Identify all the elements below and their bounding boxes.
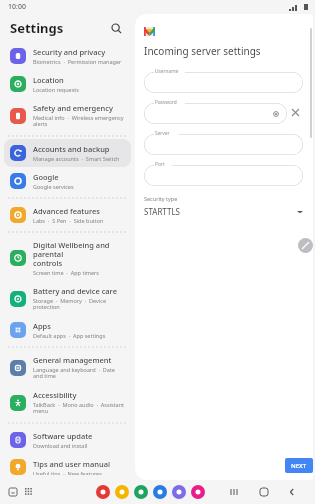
staticText: Password [155, 99, 177, 106]
staticText: Incoming server settings [144, 44, 261, 58]
button[interactable]: msg [153, 485, 167, 499]
staticText: Google [33, 172, 59, 182]
button[interactable] [144, 72, 303, 93]
button[interactable]: cam [191, 485, 205, 499]
button[interactable]: All apps [22, 485, 36, 499]
button[interactable]: Digital Wellbeing and parental controls [4, 235, 131, 281]
button[interactable]: Back [284, 484, 300, 500]
staticText: NEXT [291, 462, 307, 470]
button[interactable]: Battery and device care [4, 281, 131, 316]
staticText: Manage accounts · Smart Switch [33, 155, 120, 162]
staticText: Username [155, 68, 179, 75]
staticText: Default apps · App settings [33, 332, 106, 339]
staticText: Safety and emergency [33, 103, 113, 113]
staticText: Accessibility [33, 390, 77, 400]
staticText: Software update [33, 431, 93, 441]
staticText: Screen time · App timers [33, 269, 99, 276]
button[interactable]: Location [4, 70, 131, 98]
button[interactable]: NEXT [285, 458, 313, 473]
staticText: Location requests [33, 86, 79, 93]
staticText: Useful tips · New features [33, 470, 102, 475]
button[interactable]: Advanced features [4, 201, 131, 229]
button[interactable]: Accessibility [4, 385, 131, 420]
button[interactable]: Edit [298, 238, 313, 253]
staticText: Battery and device care [33, 286, 117, 296]
button[interactable]: Recents [227, 484, 243, 500]
staticText: STARTTLS [144, 206, 181, 217]
staticText: Labs · S Pen · Side button [33, 217, 104, 224]
staticText: Port [155, 161, 165, 168]
button[interactable]: Software update [4, 426, 131, 454]
staticText: Location [33, 75, 64, 85]
staticText: TalkBack · Mono audio · Assistant menu [33, 401, 125, 415]
button[interactable]: samsung [172, 485, 186, 499]
staticText: Server [155, 130, 170, 137]
staticText: Security type [144, 195, 178, 202]
staticText: Language and keyboard · Date and time [33, 366, 125, 380]
staticText: Digital Wellbeing and parental controls [33, 240, 125, 268]
button[interactable]: Recent apps panel [6, 485, 20, 499]
staticText: Storage · Memory · Device protection [33, 297, 125, 311]
button[interactable]: Google [4, 167, 131, 195]
staticText: Download and install [33, 442, 88, 449]
staticText: Settings [10, 19, 64, 37]
button[interactable]: files [115, 485, 129, 499]
staticText: Medical info · Wireless emergency alerts [33, 114, 125, 128]
staticText: 10:00 [8, 2, 26, 12]
staticText: Advanced features [33, 206, 100, 216]
button[interactable]: General management [4, 350, 131, 385]
button[interactable]: Clear password [287, 104, 303, 120]
staticText: General management [33, 355, 112, 365]
button[interactable]: Tips and user manual [4, 454, 131, 480]
button[interactable] [144, 165, 303, 186]
staticText: Google services [33, 183, 74, 190]
button[interactable]: note [96, 485, 110, 499]
button[interactable]: Apps [4, 316, 131, 344]
button[interactable] [144, 134, 303, 155]
button[interactable] [144, 103, 287, 124]
staticText: Security and privacy [33, 47, 106, 57]
button[interactable]: Accounts and backup [4, 139, 131, 167]
button[interactable]: Home [256, 484, 272, 500]
button[interactable]: Search settings [107, 19, 125, 37]
staticText: Biometrics · Permission manager [33, 58, 122, 65]
staticText: Accounts and backup [33, 144, 110, 154]
button[interactable]: phone [134, 485, 148, 499]
staticText: Tips and user manual [33, 459, 110, 469]
staticText: Apps [33, 321, 51, 331]
button[interactable]: Safety and emergency [4, 98, 131, 133]
button[interactable]: Security and privacy [4, 42, 131, 70]
button[interactable]: STARTTLS [144, 206, 303, 217]
